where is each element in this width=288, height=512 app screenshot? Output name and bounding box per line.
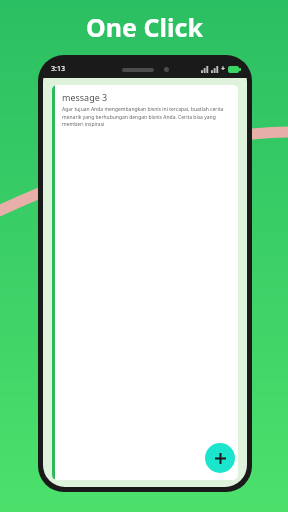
staticText: One Click	[86, 10, 203, 44]
staticText: message 3	[62, 91, 108, 103]
button[interactable]: Add message	[205, 443, 235, 473]
staticText: 3:13	[51, 64, 65, 74]
button[interactable]: message 3	[52, 85, 238, 480]
staticText: Agar tujuan Anda mengembangkan bisnis in…	[62, 106, 232, 127]
staticText: +	[221, 64, 226, 74]
